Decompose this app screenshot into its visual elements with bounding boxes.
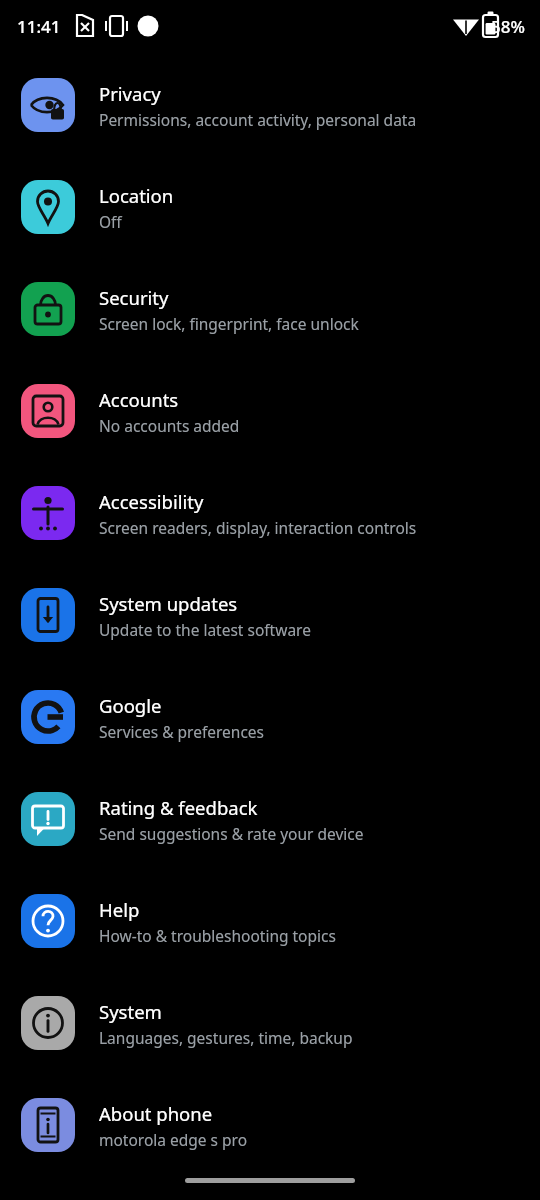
staticText: Send suggestions & rate your device bbox=[99, 823, 364, 844]
button[interactable]: Accessibility bbox=[0, 462, 540, 564]
staticText: 11:41 bbox=[17, 15, 61, 38]
staticText: About phone bbox=[99, 1101, 213, 1126]
staticText: Update to the latest software bbox=[99, 619, 311, 640]
staticText: Off bbox=[99, 211, 122, 232]
button[interactable]: System bbox=[0, 972, 540, 1074]
button[interactable]: System updates bbox=[0, 564, 540, 666]
staticText: Accessibility bbox=[99, 489, 204, 514]
staticText: Services & preferences bbox=[99, 721, 264, 742]
staticText: motorola edge s pro bbox=[99, 1129, 248, 1150]
button[interactable]: Help bbox=[0, 870, 540, 972]
staticText: System bbox=[99, 999, 162, 1024]
button[interactable]: About phone bbox=[0, 1074, 540, 1176]
staticText: Accounts bbox=[99, 387, 179, 412]
button[interactable]: Privacy bbox=[0, 54, 540, 156]
staticText: No accounts added bbox=[99, 415, 240, 436]
button[interactable]: Security bbox=[0, 258, 540, 360]
button[interactable]: Rating & feedback bbox=[0, 768, 540, 870]
staticText: Security bbox=[99, 285, 169, 310]
button[interactable]: Accounts bbox=[0, 360, 540, 462]
staticText: System updates bbox=[99, 591, 238, 616]
staticText: Help bbox=[99, 897, 140, 922]
button[interactable]: Google bbox=[0, 666, 540, 768]
staticText: Screen readers, display, interaction con… bbox=[99, 517, 417, 538]
staticText: Rating & feedback bbox=[99, 795, 258, 820]
staticText: How-to & troubleshooting topics bbox=[99, 925, 336, 946]
staticText: Privacy bbox=[99, 81, 161, 106]
staticText: Languages, gestures, time, backup bbox=[99, 1027, 353, 1048]
staticText: Screen lock, fingerprint, face unlock bbox=[99, 313, 359, 334]
staticText: Permissions, account activity, personal … bbox=[99, 109, 417, 130]
staticText: 58% bbox=[491, 15, 525, 38]
staticText: Google bbox=[99, 693, 162, 718]
button[interactable]: Location bbox=[0, 156, 540, 258]
staticText: Location bbox=[99, 183, 174, 208]
